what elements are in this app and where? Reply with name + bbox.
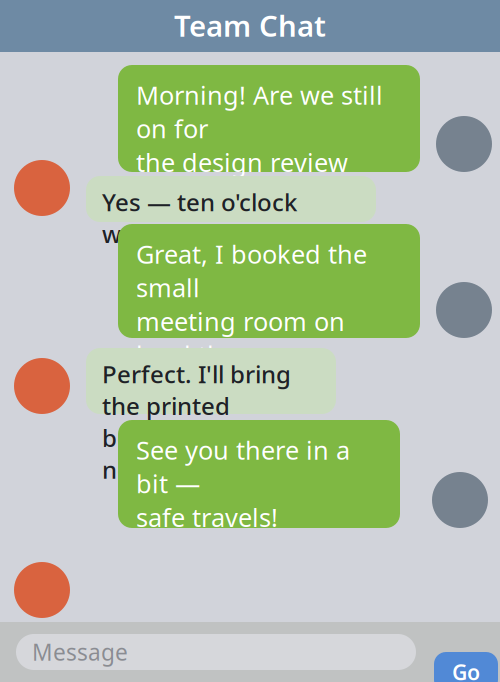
staticText: Go [452, 658, 480, 682]
staticText: Team Chat [174, 6, 326, 45]
staticText: Morning! Are we still on for the design … [136, 78, 383, 213]
button[interactable]: Go [434, 652, 498, 682]
staticText: Great, I booked the small meeting room o… [136, 237, 367, 372]
staticText: Yes — ten o'clock works for me. [102, 186, 297, 250]
staticText: Message [32, 637, 128, 667]
staticText: Perfect. I'll bring the printed boards a… [102, 358, 291, 485]
staticText: See you there in a bit — safe travels! [136, 433, 350, 534]
